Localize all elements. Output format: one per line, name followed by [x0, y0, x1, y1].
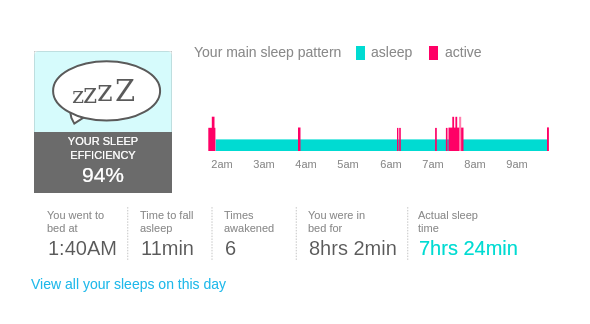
button[interactable]: Time to fall [140, 202, 255, 260]
staticText: You were in [308, 209, 366, 221]
staticText: 6 [225, 237, 237, 259]
staticText: awakened [224, 222, 275, 234]
button[interactable]: Actual sleep [418, 202, 533, 260]
staticText: 6am [371, 158, 411, 170]
staticText: z [83, 78, 98, 109]
staticText: 11min [141, 237, 194, 259]
staticText: Time to fall [140, 209, 194, 221]
staticText: z [72, 82, 85, 109]
staticText: 9am [497, 158, 537, 170]
staticText: You went to [47, 209, 105, 221]
staticText: 1:40AM [48, 237, 117, 259]
button[interactable]: You were in [308, 202, 423, 260]
button[interactable]: z [34, 51, 172, 193]
staticText: 4am [286, 158, 326, 170]
staticText: time [418, 222, 439, 234]
staticText: Actual sleep [418, 209, 478, 221]
staticText: 3am [244, 158, 284, 170]
staticText: Z [115, 74, 136, 108]
staticText: asleep [371, 44, 413, 60]
staticText: View all your sleeps on this day [31, 276, 227, 292]
staticText: bed at [47, 222, 78, 234]
staticText: 94% [34, 163, 172, 186]
staticText: active [445, 44, 482, 60]
staticText: Your main sleep pattern [194, 44, 342, 60]
button[interactable]: View all your sleeps on this day [31, 276, 227, 292]
staticText: 5am [328, 158, 368, 170]
staticText: YOUR SLEEP [34, 135, 172, 147]
staticText: z [97, 73, 113, 108]
staticText: asleep [140, 222, 173, 234]
staticText: Times [224, 209, 254, 221]
staticText: 7hrs 24min [419, 237, 518, 259]
button[interactable]: Times [224, 202, 339, 260]
staticText: EFFICIENCY [34, 149, 172, 161]
staticText: bed for [308, 222, 343, 234]
staticText: 8am [455, 158, 495, 170]
staticText: 2am [202, 158, 242, 170]
button[interactable]: You went to [47, 202, 162, 260]
staticText: 8hrs 2min [309, 237, 397, 259]
staticText: 7am [413, 158, 453, 170]
